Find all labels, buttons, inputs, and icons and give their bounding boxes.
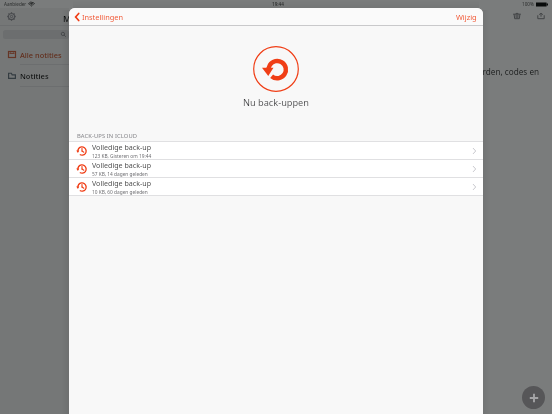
button[interactable]: Delete note — [511, 11, 523, 21]
staticText: 10 KB, 60 dagen geleden — [92, 189, 148, 195]
button[interactable]: New note — [522, 386, 545, 409]
staticText: Volledige back-up — [92, 178, 152, 188]
button[interactable]: Volledige back-up — [69, 178, 483, 195]
staticText: 57 KB, 14 dagen geleden — [92, 171, 148, 177]
staticText: 19:44 — [272, 1, 284, 7]
staticText: Volledige back-up — [92, 160, 152, 170]
staticText: Volledige back-up — [92, 142, 152, 152]
button[interactable]: Share note — [535, 11, 547, 21]
button[interactable]: Wijzig — [450, 8, 483, 26]
staticText: Wijzig — [456, 12, 477, 22]
staticText: Aanbieder — [4, 1, 27, 7]
staticText: Notities — [20, 71, 49, 81]
staticText: 100% — [522, 1, 534, 7]
button[interactable]: Instellingen — [69, 8, 128, 26]
staticText: Alle notities — [20, 50, 62, 60]
button[interactable]: Volledige back-up — [69, 142, 483, 159]
staticText: 123 KB, Gisteren om 19:44 — [92, 153, 152, 159]
staticText: Je kunt in Notities ook wachtwoorden, co… — [357, 66, 540, 77]
staticText: BACK-UPS IN ICLOUD — [77, 132, 138, 140]
staticText: Nu back-uppen — [243, 96, 309, 109]
staticText: Mijn notities — [63, 13, 115, 25]
button[interactable]: Volledige back-up — [69, 160, 483, 177]
staticText: Instellingen — [82, 12, 124, 22]
button[interactable]: Nu back-uppen — [69, 46, 483, 109]
